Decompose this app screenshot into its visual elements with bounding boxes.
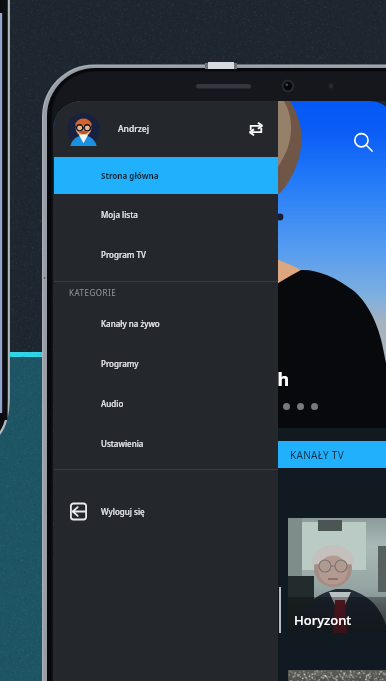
- button[interactable]: Moja lista: [54, 194, 278, 234]
- staticText: Andrzej: [118, 123, 149, 135]
- staticText: Horyzont: [294, 611, 352, 629]
- button[interactable]: Switch account: [241, 114, 271, 144]
- button[interactable]: Search: [347, 126, 379, 158]
- staticText: Rodzinny fotograph: [112, 367, 290, 392]
- button[interactable]: Strona główna: [54, 157, 278, 194]
- staticText: Ustawienia: [101, 438, 144, 449]
- staticText: Moja lista: [101, 209, 138, 220]
- button[interactable]: Andrzej: [54, 101, 278, 157]
- staticText: KANAŁY TV: [290, 448, 345, 462]
- button[interactable]: Ustawienia: [54, 423, 278, 463]
- staticText: Wyloguj się: [101, 506, 145, 517]
- staticText: KATEGORIE: [69, 287, 117, 298]
- button[interactable]: Audio: [54, 383, 278, 423]
- button[interactable]: Wyloguj się: [54, 470, 278, 552]
- staticText: Programy: [101, 358, 139, 369]
- button[interactable]: Kanały na żywo: [54, 303, 278, 343]
- button[interactable]: KANAŁY TV: [54, 441, 386, 468]
- button[interactable]: Programy: [54, 343, 278, 383]
- staticText: Audio: [101, 398, 124, 409]
- staticText: Strona główna: [101, 170, 159, 181]
- button[interactable]: Horyzont: [288, 518, 386, 633]
- staticText: Program TV: [101, 249, 146, 260]
- staticText: Kanały na żywo: [101, 318, 160, 329]
- button[interactable]: [288, 670, 386, 681]
- button[interactable]: Program TV: [54, 234, 278, 274]
